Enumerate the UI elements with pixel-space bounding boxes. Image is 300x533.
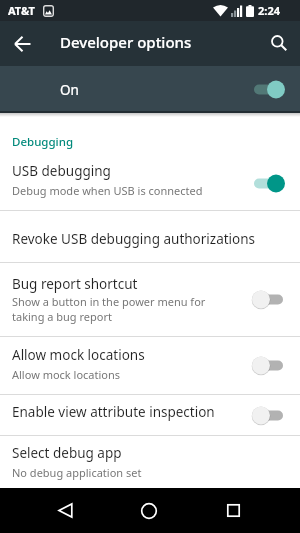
staticText: No debug application set — [12, 465, 142, 480]
button[interactable] — [258, 21, 300, 66]
button[interactable] — [0, 21, 45, 66]
staticText: Allow mock locations — [12, 367, 121, 382]
button[interactable]: Revoke USB debugging authorizations — [0, 211, 300, 262]
staticText: Revoke USB debugging authorizations — [12, 230, 256, 248]
staticText: On — [60, 81, 79, 99]
button[interactable]: On — [0, 66, 300, 113]
staticText: Bug report shortcut — [12, 275, 138, 293]
staticText: USB debugging — [12, 162, 111, 180]
button[interactable]: Select debug app — [0, 436, 300, 488]
button[interactable] — [34, 488, 101, 533]
button[interactable]: USB debugging — [0, 156, 300, 210]
staticText: Allow mock locations — [12, 346, 145, 364]
staticText: Enable view attribute inspection — [12, 403, 215, 421]
staticText: Debugging — [12, 134, 74, 150]
staticText: Show a button in the power menu for taki… — [12, 294, 206, 324]
staticText: Debug mode when USB is connected — [12, 183, 203, 198]
staticText: 2:24 — [258, 3, 280, 18]
button[interactable]: Bug report shortcut — [0, 263, 300, 336]
staticText: Select debug app — [12, 444, 122, 462]
button[interactable] — [117, 488, 184, 533]
button[interactable]: Enable view attribute inspection — [0, 395, 300, 435]
button[interactable] — [200, 488, 267, 533]
staticText: AT&T — [8, 3, 35, 18]
button[interactable]: Allow mock locations — [0, 337, 300, 394]
staticText: Developer options — [60, 32, 192, 52]
